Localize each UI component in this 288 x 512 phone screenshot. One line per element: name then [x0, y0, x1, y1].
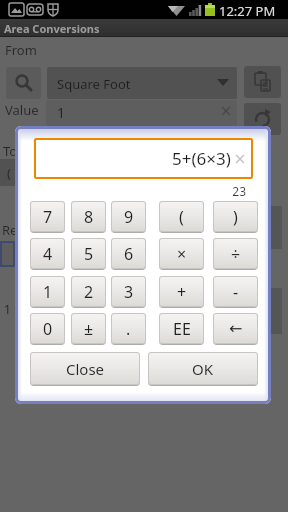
staticText: ÷ — [231, 243, 241, 265]
staticText: ( — [179, 206, 184, 228]
button[interactable]: 8 — [71, 201, 106, 232]
staticText: ( — [7, 164, 11, 182]
staticText: + — [177, 281, 187, 303]
button[interactable]: + — [159, 276, 204, 307]
button[interactable] — [244, 66, 281, 98]
staticText: 5+(6×3) — [172, 147, 231, 170]
button[interactable]: 0 — [30, 313, 65, 344]
button[interactable] — [244, 103, 281, 135]
staticText: 12:27 PM — [219, 2, 276, 20]
staticText: 0 — [43, 318, 53, 340]
staticText: Square Foot — [57, 75, 131, 93]
staticText: × — [177, 243, 187, 265]
staticText: Area Conversions — [4, 21, 100, 36]
staticText: 8 — [84, 206, 94, 228]
button[interactable]: 5 — [71, 238, 106, 269]
button[interactable]: . — [111, 313, 146, 344]
staticText: - — [233, 281, 239, 303]
button[interactable]: - — [213, 276, 258, 307]
button[interactable]: EE — [159, 313, 204, 344]
staticText: 2 — [84, 281, 94, 303]
staticText: 7 — [43, 206, 53, 228]
button[interactable]: Close — [30, 352, 140, 385]
staticText: 1 : — [4, 301, 18, 317]
staticText: 1 — [57, 103, 66, 122]
button[interactable] — [6, 67, 41, 99]
staticText: Close — [66, 359, 105, 379]
staticText: 3 — [124, 281, 134, 303]
button[interactable]: 6 — [111, 238, 146, 269]
staticText: ) — [233, 206, 238, 228]
button[interactable]: 1 — [30, 276, 65, 307]
button[interactable]: 9 — [111, 201, 146, 232]
staticText: 4 — [43, 243, 53, 265]
staticText: 6 — [124, 243, 134, 265]
button[interactable]: ÷ — [213, 238, 258, 269]
staticText: EE — [173, 318, 191, 340]
button[interactable]: × — [159, 238, 204, 269]
staticText: Result — [2, 221, 40, 239]
staticText: 1 — [43, 281, 53, 303]
staticText: From — [5, 41, 37, 59]
button[interactable]: 7 — [30, 201, 65, 232]
staticText: ← — [229, 319, 243, 338]
button[interactable]: Square Foot — [47, 67, 237, 99]
button[interactable]: 3 — [111, 276, 146, 307]
staticText: . — [126, 318, 131, 340]
staticText: OK — [192, 359, 214, 379]
button[interactable]: 4 — [30, 238, 65, 269]
staticText: Value — [5, 101, 39, 119]
button[interactable]: ( — [159, 201, 204, 232]
staticText: To — [3, 142, 18, 160]
staticText: 23 — [232, 183, 246, 199]
button[interactable]: 1 — [46, 100, 237, 126]
button[interactable]: ) — [213, 201, 258, 232]
staticText: 5 — [84, 243, 94, 265]
button[interactable]: ← — [213, 313, 258, 344]
button[interactable]: 5+(6×3) — [34, 138, 253, 179]
staticText: ± — [84, 318, 94, 340]
button[interactable]: 2 — [71, 276, 106, 307]
staticText: 9 — [124, 206, 134, 228]
button[interactable]: ± — [71, 313, 106, 344]
button[interactable]: OK — [148, 352, 258, 385]
